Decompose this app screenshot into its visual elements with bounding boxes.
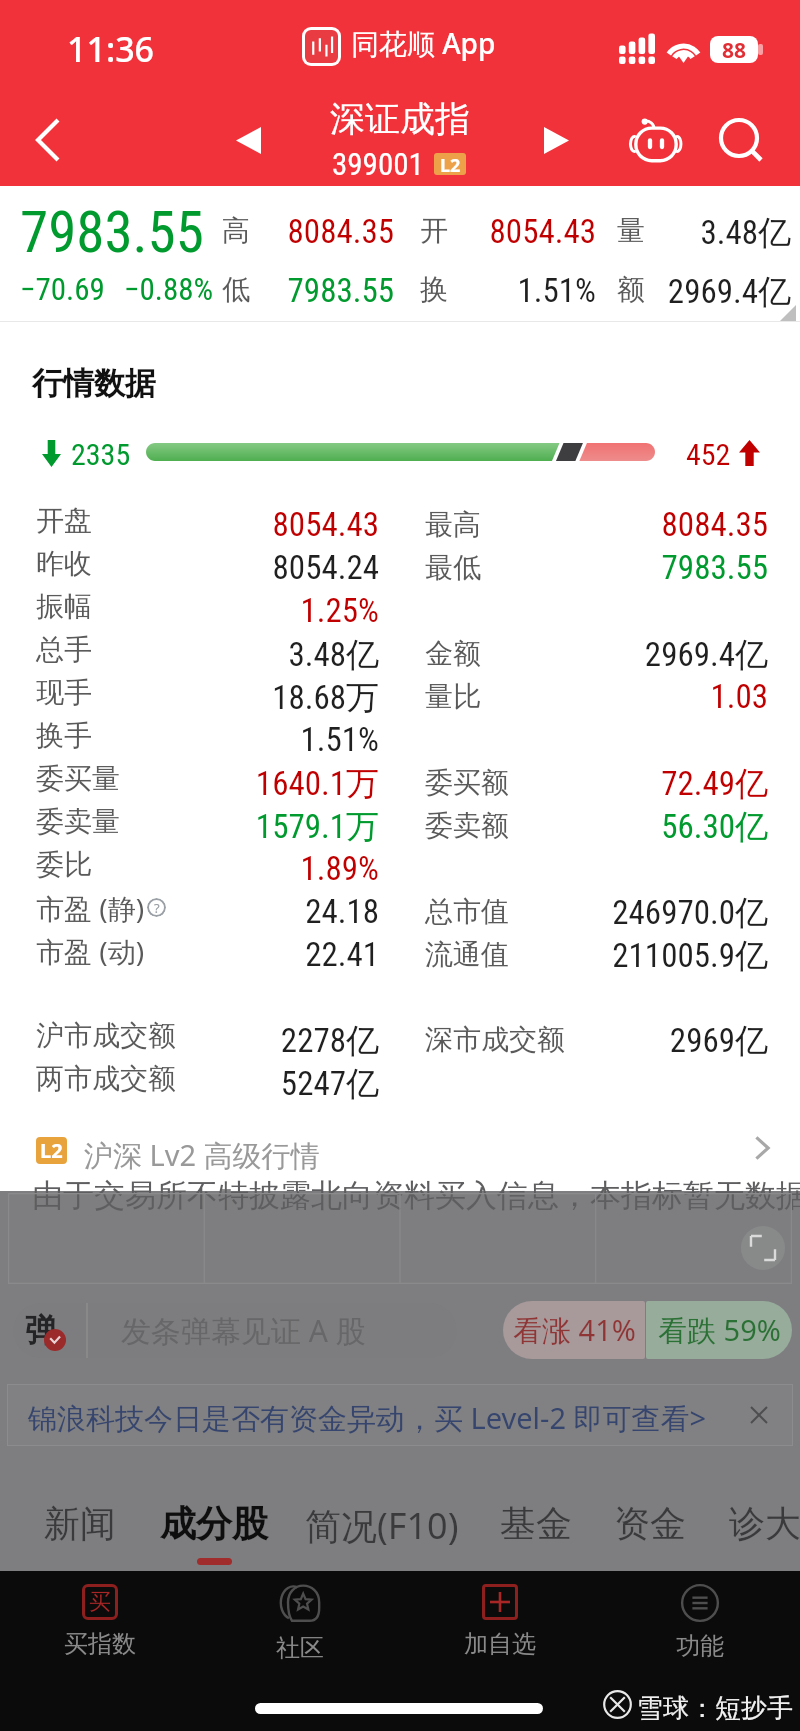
staticText: −70.69 bbox=[20, 271, 105, 307]
staticText: 1.89% bbox=[180, 849, 379, 888]
staticText: 成分股 bbox=[160, 1501, 268, 1546]
staticText: L2 bbox=[440, 153, 461, 175]
staticText: 由于交易所不特披露北向资料买入信息，本指标暂无数据 bbox=[32, 1176, 800, 1215]
button[interactable]: Search bbox=[710, 112, 772, 168]
staticText: 3.48亿 bbox=[645, 212, 791, 254]
button[interactable]: 看涨 41% bbox=[503, 1301, 645, 1359]
staticText: 72.49亿 bbox=[540, 763, 768, 805]
button[interactable]: Next stock bbox=[526, 110, 586, 170]
staticText: 1640.1万 bbox=[180, 763, 379, 805]
button[interactable]: 看跌 59% bbox=[646, 1301, 792, 1359]
staticText: 1579.1万 bbox=[180, 806, 379, 848]
staticText: 沪市成交额 bbox=[36, 1018, 176, 1053]
button[interactable]: AI assistant bbox=[624, 112, 688, 168]
staticText: 开盘 bbox=[36, 503, 92, 538]
button[interactable]: 基金 bbox=[500, 1501, 572, 1571]
staticText: 市盈 (动) bbox=[36, 932, 145, 970]
staticText: 功能 bbox=[676, 1631, 724, 1661]
staticText: 振幅 bbox=[36, 589, 92, 624]
button[interactable]: 诊大 bbox=[729, 1501, 800, 1571]
staticText: 深市成交额 bbox=[425, 1022, 565, 1057]
staticText: 3.48亿 bbox=[180, 634, 379, 676]
staticText: 换手 bbox=[36, 718, 92, 753]
staticText: 11:36 bbox=[67, 26, 155, 72]
staticText: 最低 bbox=[425, 550, 481, 585]
staticText: 同花顺 App bbox=[351, 24, 496, 62]
staticText: 88 bbox=[722, 36, 747, 63]
staticText: 246970.0亿 bbox=[540, 892, 768, 934]
staticText: 加自选 bbox=[464, 1629, 536, 1659]
staticText: 社区 bbox=[276, 1633, 324, 1663]
button[interactable]: 发条弹幕见证 A 股 bbox=[13, 1303, 457, 1358]
staticText: 量 bbox=[617, 213, 645, 248]
staticText: 7983.55 bbox=[540, 548, 768, 587]
button[interactable]: L2 bbox=[0, 1120, 800, 1180]
staticText: 56.30亿 bbox=[540, 806, 768, 848]
staticText: 8054.43 bbox=[453, 212, 596, 251]
button[interactable]: 买 bbox=[1, 1571, 199, 1671]
staticText: 换 bbox=[420, 272, 448, 307]
staticText: 买指数 bbox=[64, 1629, 136, 1659]
staticText: 22.41 bbox=[180, 935, 379, 974]
button[interactable]: Fullscreen chart bbox=[741, 1226, 785, 1270]
staticText: 简况(F10) bbox=[305, 1501, 459, 1550]
staticText: 1.03 bbox=[540, 677, 768, 716]
staticText: 深证成指 bbox=[0, 97, 800, 141]
staticText: 2969亿 bbox=[540, 1020, 768, 1062]
staticText: 7983.55 bbox=[20, 199, 204, 266]
staticText: 399001 bbox=[332, 146, 424, 182]
staticText: 1.51% bbox=[453, 271, 596, 310]
staticText: 2969.4亿 bbox=[645, 271, 791, 313]
staticText: 看涨 41% bbox=[513, 1310, 636, 1350]
staticText: 锦浪科技今日是否有资金异动，买 Level-2 即可查看> bbox=[28, 1398, 707, 1438]
staticText: 5247亿 bbox=[180, 1063, 379, 1105]
button[interactable]: Back bbox=[16, 108, 80, 172]
staticText: 委卖额 bbox=[425, 808, 509, 843]
button[interactable]: 新闻 bbox=[44, 1501, 116, 1571]
staticText: 资金 bbox=[614, 1501, 686, 1546]
staticText: 18.68万 bbox=[180, 677, 379, 719]
staticText: 弹 bbox=[25, 1310, 57, 1350]
staticText: 8084.35 bbox=[255, 212, 394, 251]
staticText: 8054.43 bbox=[180, 505, 379, 544]
staticText: 委卖量 bbox=[36, 804, 120, 839]
staticText: 总手 bbox=[36, 632, 92, 667]
staticText: 高 bbox=[222, 213, 250, 248]
staticText: 2278亿 bbox=[180, 1020, 379, 1062]
staticText: 开 bbox=[420, 213, 448, 248]
staticText: 发条弹幕见证 A 股 bbox=[121, 1310, 366, 1351]
staticText: 基金 bbox=[500, 1501, 572, 1546]
staticText: 新闻 bbox=[44, 1501, 116, 1546]
staticText: 雪球：短抄手 bbox=[637, 1692, 793, 1725]
staticText: 市盈 (静) bbox=[36, 889, 145, 927]
staticText: 量比 bbox=[425, 679, 481, 714]
staticText: 昨收 bbox=[36, 546, 92, 581]
staticText: 行情数据 bbox=[32, 364, 156, 403]
staticText: 看跌 59% bbox=[658, 1310, 781, 1350]
button[interactable]: 功能 bbox=[601, 1571, 799, 1671]
staticText: 8054.24 bbox=[180, 548, 379, 587]
button[interactable]: Previous stock bbox=[218, 110, 278, 170]
button[interactable]: 社区 bbox=[201, 1571, 399, 1671]
staticText: 24.18 bbox=[180, 892, 379, 931]
staticText: 452 bbox=[686, 437, 731, 472]
button[interactable]: Close ad bbox=[745, 1401, 773, 1429]
button[interactable]: 成分股 bbox=[160, 1501, 268, 1571]
staticText: 沪深 Lv2 高级行情 bbox=[84, 1135, 320, 1175]
staticText: 委买量 bbox=[36, 761, 120, 796]
button[interactable]: 锦浪科技今日是否有资金异动，买 Level-2 即可查看> bbox=[7, 1384, 793, 1446]
staticText: 2969.4亿 bbox=[540, 634, 768, 676]
staticText: 现手 bbox=[36, 675, 92, 710]
staticText: 总市值 bbox=[425, 894, 509, 929]
staticText: L2 bbox=[40, 1137, 63, 1164]
staticText: 8084.35 bbox=[540, 505, 768, 544]
staticText: −0.88% bbox=[124, 271, 214, 307]
button[interactable]: 加自选 bbox=[401, 1571, 599, 1671]
staticText: 1.51% bbox=[180, 720, 379, 759]
staticText: 2335 bbox=[71, 437, 131, 472]
staticText: 1.25% bbox=[180, 591, 379, 630]
staticText: 金额 bbox=[425, 636, 481, 671]
staticText: 买 bbox=[89, 1588, 111, 1616]
button[interactable]: 资金 bbox=[614, 1501, 686, 1571]
button[interactable]: 简况(F10) bbox=[305, 1501, 459, 1571]
